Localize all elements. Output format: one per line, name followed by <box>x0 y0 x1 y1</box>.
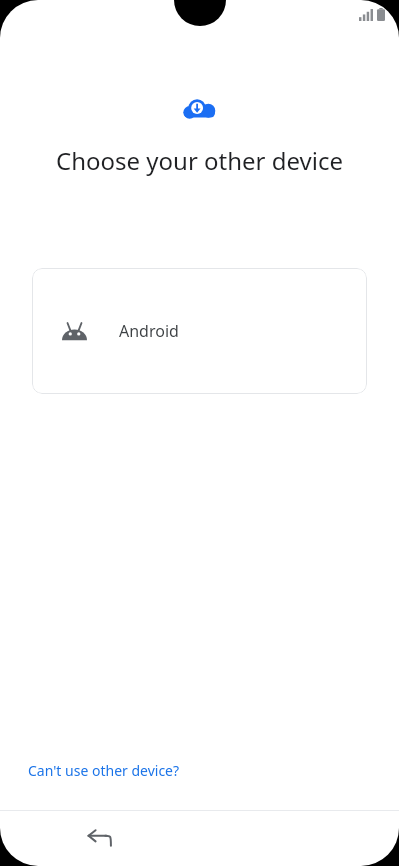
staticText: Choose your other device <box>20 144 379 177</box>
staticText: Can't use other device? <box>28 761 180 780</box>
button[interactable]: Back <box>76 815 124 863</box>
button[interactable]: Can't use other device? <box>14 755 194 786</box>
button[interactable]: Android <box>32 268 367 394</box>
staticText: Android <box>119 320 179 342</box>
